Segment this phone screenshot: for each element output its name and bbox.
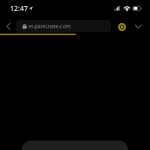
button[interactable]: Back bbox=[1, 18, 17, 34]
button[interactable]: Show Toolbar bbox=[130, 18, 146, 34]
staticText: m.pann.nate.com bbox=[28, 23, 70, 30]
button[interactable]: m.pann.nate.com bbox=[16, 20, 111, 32]
button[interactable]: Page Settings bbox=[115, 20, 129, 34]
staticText: 12:47 bbox=[10, 4, 28, 13]
button[interactable]: Toolbar bbox=[22, 140, 128, 150]
